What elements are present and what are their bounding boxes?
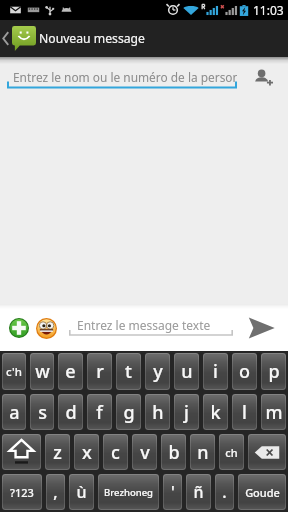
staticText: w <box>35 359 50 384</box>
staticText: y <box>153 359 163 384</box>
button[interactable]: d <box>58 394 83 430</box>
button[interactable]: Shift <box>2 434 41 470</box>
staticText: l <box>242 400 247 425</box>
staticText: p <box>268 359 280 384</box>
staticText: o <box>239 359 250 384</box>
button[interactable]: p <box>261 353 286 390</box>
button[interactable]: b <box>161 434 186 470</box>
button[interactable]: x <box>74 434 99 470</box>
staticText: Nouveau message <box>39 30 145 47</box>
button[interactable]: w <box>30 353 54 390</box>
staticText: ' <box>171 481 175 503</box>
button[interactable]: i <box>203 353 228 390</box>
button[interactable]: ' <box>163 474 182 510</box>
staticText: g <box>123 400 135 425</box>
button[interactable]: r <box>87 353 112 390</box>
staticText: , <box>53 481 58 503</box>
button[interactable]: v <box>132 434 157 470</box>
staticText: t <box>125 359 132 384</box>
button[interactable]: Send <box>242 309 280 347</box>
button[interactable]: e <box>58 353 83 390</box>
button[interactable]: a <box>2 394 26 430</box>
button[interactable]: Add recipient <box>249 63 277 91</box>
button[interactable]: f <box>87 394 112 430</box>
other: Back <box>2 31 10 46</box>
staticText: . <box>222 481 227 503</box>
button[interactable]: Attach <box>6 315 32 341</box>
button[interactable]: l <box>232 394 257 430</box>
staticText: j <box>184 400 189 425</box>
staticText: Goude <box>245 485 280 500</box>
staticText: r <box>96 359 104 384</box>
staticText: c <box>111 440 120 465</box>
staticText: v <box>140 440 150 465</box>
staticText: b <box>168 440 180 465</box>
button[interactable]: Emoji <box>33 315 59 341</box>
staticText: ñ <box>193 481 204 503</box>
button[interactable]: k <box>203 394 228 430</box>
staticText: n <box>197 440 209 465</box>
button[interactable]: ch <box>219 434 244 470</box>
button[interactable]: u <box>174 353 199 390</box>
button[interactable]: m <box>261 394 286 430</box>
staticText: ch <box>225 445 238 460</box>
button[interactable]: ñ <box>186 474 211 510</box>
button[interactable]: ù <box>69 474 94 510</box>
staticText: a <box>9 400 20 425</box>
staticText: f <box>96 400 103 425</box>
staticText: z <box>53 440 62 465</box>
button[interactable]: Back <box>0 20 145 57</box>
staticText: i <box>213 359 218 384</box>
staticText: s <box>38 400 47 425</box>
staticText: Brezhoneg <box>104 486 153 499</box>
button[interactable]: z <box>45 434 70 470</box>
button[interactable]: . <box>215 474 234 510</box>
button[interactable]: c'h <box>2 353 26 390</box>
button[interactable]: Backspace <box>248 434 286 470</box>
button[interactable]: ?123 <box>2 474 42 510</box>
staticText: ?123 <box>10 485 34 500</box>
staticText: Entrez le message texte <box>77 317 211 333</box>
staticText: d <box>65 400 77 425</box>
button[interactable]: c <box>103 434 128 470</box>
button[interactable]: Goude <box>238 474 286 510</box>
staticText: ù <box>76 481 87 503</box>
button[interactable]: Brezhoneg <box>98 474 159 510</box>
button[interactable]: h <box>145 394 170 430</box>
staticText: h <box>152 400 164 425</box>
button[interactable]: , <box>46 474 65 510</box>
other: Backspace <box>254 445 280 460</box>
staticText: c'h <box>6 364 22 380</box>
button[interactable]: y <box>145 353 170 390</box>
staticText: k <box>210 400 221 425</box>
staticText: u <box>181 359 193 384</box>
button[interactable]: g <box>116 394 141 430</box>
staticText: Entrez le nom ou le numéro de la personn… <box>13 69 237 85</box>
staticText: 11:03 <box>253 2 284 18</box>
staticText: x <box>82 440 92 465</box>
staticText: e <box>65 359 76 384</box>
other: Shift <box>8 438 35 466</box>
button[interactable]: n <box>190 434 215 470</box>
button[interactable]: s <box>30 394 54 430</box>
button[interactable]: o <box>232 353 257 390</box>
staticText: m <box>265 400 283 425</box>
button[interactable]: j <box>174 394 199 430</box>
button[interactable]: t <box>116 353 141 390</box>
